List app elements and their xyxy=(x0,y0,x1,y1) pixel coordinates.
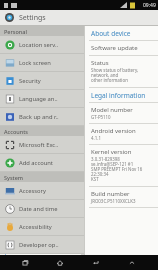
staticText: Software update xyxy=(91,44,138,52)
other: Settings icon xyxy=(5,13,14,22)
button[interactable]: Model number xyxy=(85,103,158,123)
button[interactable]: Kernel version xyxy=(85,145,158,186)
staticText: System xyxy=(4,174,24,181)
button[interactable]: Home xyxy=(50,255,70,270)
button[interactable]: Software update xyxy=(85,41,158,55)
staticText: JRO03C.P5110XXCLK3 xyxy=(91,198,136,204)
staticText: 3.0.31-829398 se.infra@SEP-121 #1 SMP PR… xyxy=(91,156,155,183)
button[interactable]: Add account xyxy=(0,154,84,171)
staticText: Personal xyxy=(4,28,27,35)
staticText: Location serv.. xyxy=(19,41,59,49)
staticText: Developer op.. xyxy=(19,241,59,249)
staticText: Legal information xyxy=(91,91,146,100)
staticText: Lock screen xyxy=(19,59,51,67)
staticText: Add account xyxy=(19,159,53,167)
button[interactable]: About device xyxy=(0,254,84,255)
staticText: Accessibility xyxy=(19,223,52,231)
staticText: Android version xyxy=(91,127,136,135)
staticText: Status xyxy=(91,59,109,67)
staticText: Accounts xyxy=(4,128,29,135)
staticText: Security xyxy=(19,77,41,85)
button[interactable]: Date and time xyxy=(0,200,84,217)
button[interactable]: Back xyxy=(86,255,106,270)
staticText: Kernel version xyxy=(91,148,132,156)
staticText: GT-P5110 xyxy=(91,114,111,120)
button[interactable]: Security xyxy=(0,72,84,89)
button[interactable]: Show navigation xyxy=(122,255,142,270)
button[interactable]: Build number xyxy=(85,187,158,207)
button[interactable]: Recent apps xyxy=(15,255,35,270)
button[interactable]: Status xyxy=(85,56,158,87)
button[interactable]: Android version xyxy=(85,124,158,144)
staticText: Accessory xyxy=(19,187,46,195)
button[interactable]: Location serv.. xyxy=(0,36,84,53)
button[interactable]: Language an.. xyxy=(0,90,84,107)
staticText: Language an.. xyxy=(19,95,58,103)
button[interactable]: Developer op.. xyxy=(0,236,84,253)
staticText: 09:49 xyxy=(143,2,156,9)
staticText: Settings xyxy=(19,13,46,23)
staticText: About device xyxy=(91,29,131,38)
staticText: Model number xyxy=(91,106,133,114)
staticText: 4.1.1 xyxy=(91,135,101,141)
staticText: Microsoft Exc.. xyxy=(19,141,59,149)
button[interactable]: Back up and r.. xyxy=(0,108,84,125)
staticText: Build number xyxy=(91,190,130,198)
button[interactable]: Accessibility xyxy=(0,218,84,235)
button[interactable]: Accessory xyxy=(0,182,84,199)
staticText: Show status of battery, network, and oth… xyxy=(91,67,155,84)
button[interactable]: Microsoft Exc.. xyxy=(0,136,84,153)
staticText: Back up and r.. xyxy=(19,113,59,121)
staticText: Date and time xyxy=(19,205,58,213)
button[interactable]: Lock screen xyxy=(0,54,84,71)
